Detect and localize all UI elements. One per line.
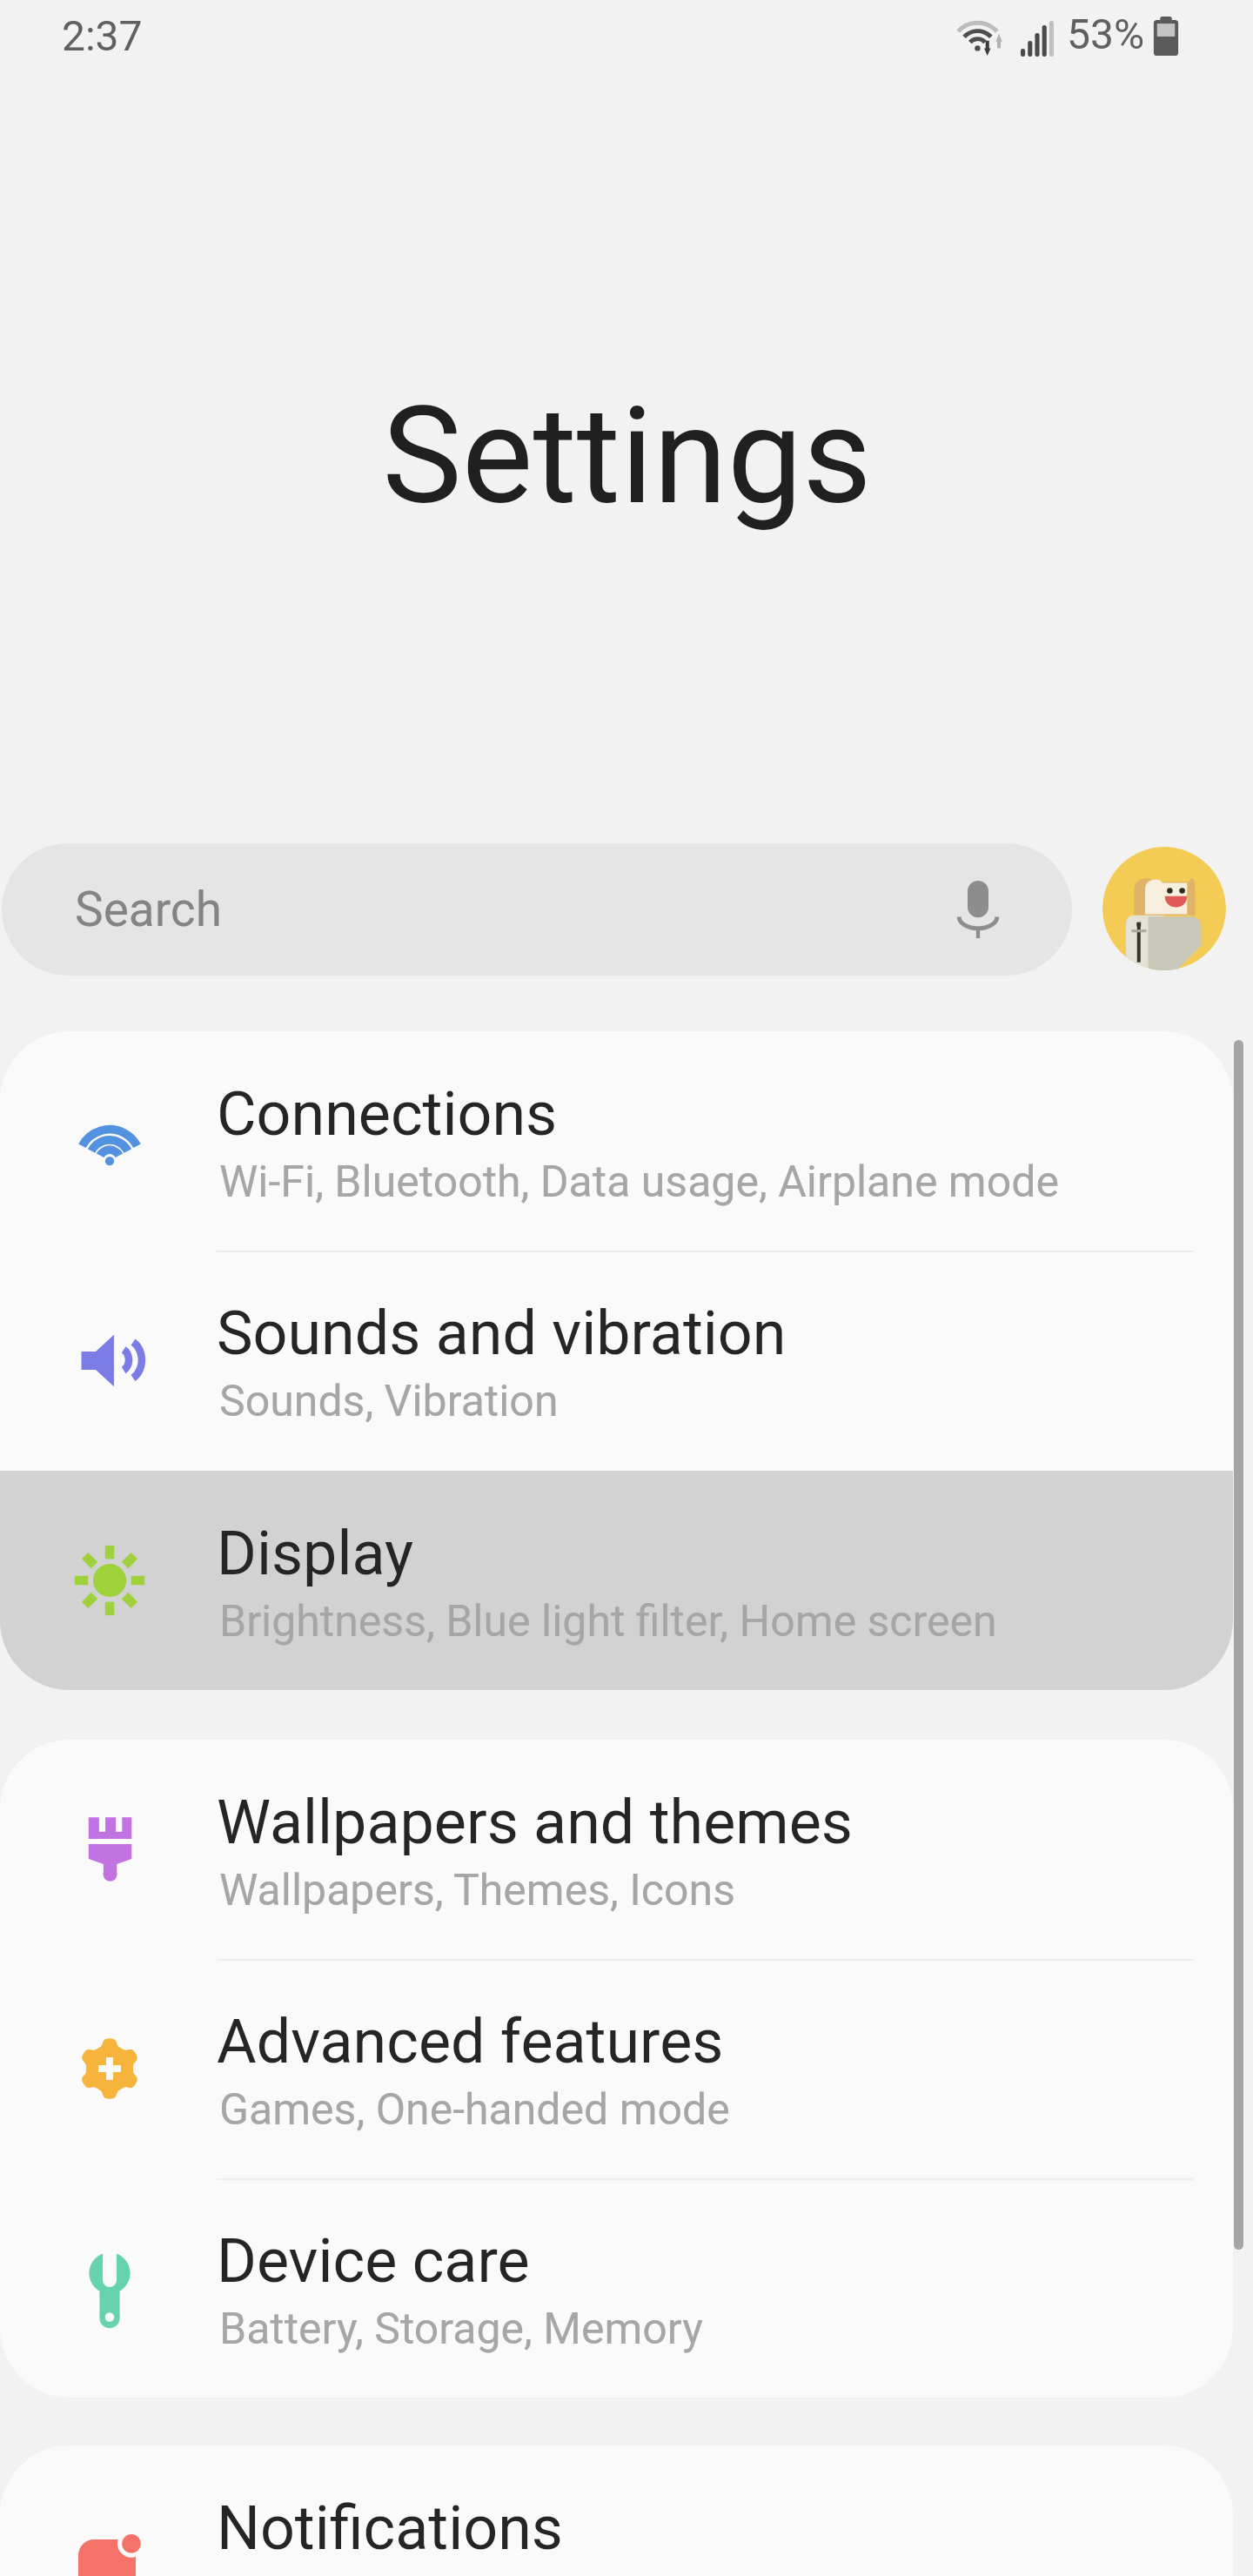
staticText: Display [217, 1518, 414, 1589]
button[interactable] [0, 1959, 1233, 2178]
button[interactable] [0, 1031, 1233, 1251]
button[interactable] [0, 2178, 1233, 2398]
button[interactable]: Search [2, 843, 1072, 976]
staticText: Wallpapers and themes [217, 1787, 853, 1858]
staticText: Settings [382, 378, 872, 534]
button[interactable]: Voice search [933, 863, 1023, 956]
staticText: Wallpapers, Themes, Icons [219, 1865, 735, 1916]
staticText: Device care [217, 2225, 530, 2297]
button[interactable]: Account [1102, 847, 1226, 970]
staticText: Brightness, Blue light filter, Home scre… [219, 1596, 997, 1647]
staticText: Notifications [217, 2492, 563, 2564]
staticText: Search [75, 882, 222, 937]
staticText: Battery, Storage, Memory [219, 2304, 703, 2355]
staticText: Games, One-handed mode [219, 2084, 730, 2136]
staticText: Sounds and vibration [217, 1298, 787, 1369]
button[interactable] [0, 1251, 1233, 1470]
staticText: Sounds, Vibration [219, 1376, 559, 1427]
staticText: Wi-Fi, Bluetooth, Data usage, Airplane m… [219, 1157, 1059, 1208]
button[interactable] [0, 1740, 1233, 1959]
staticText: Connections [217, 1078, 558, 1150]
staticText: 53% [1067, 10, 1145, 58]
button[interactable] [0, 1471, 1233, 1690]
staticText: 2:37 [62, 11, 143, 60]
button[interactable] [0, 2445, 1233, 2576]
staticText: Advanced features [217, 2006, 724, 2077]
